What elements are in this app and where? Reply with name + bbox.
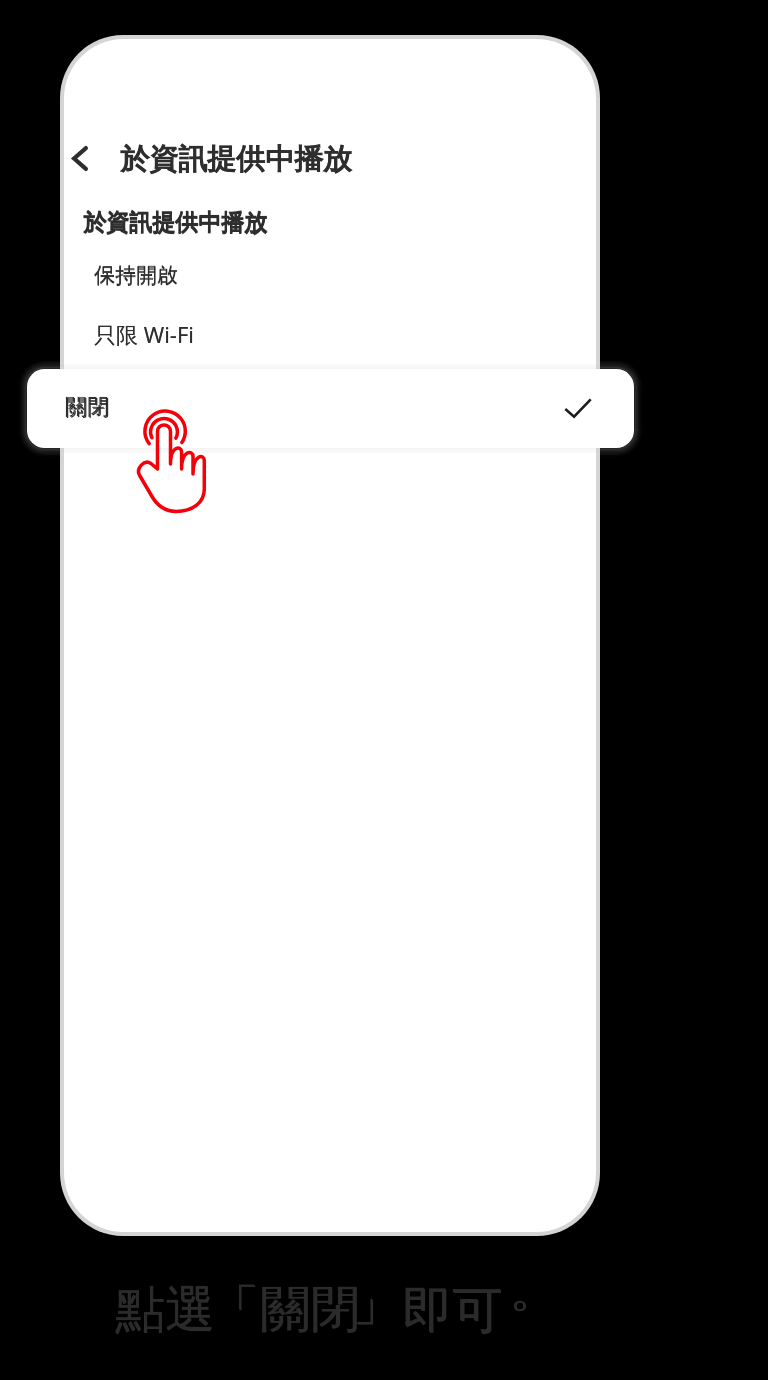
button[interactable]: 保持開啟 — [64, 247, 596, 307]
staticText: 於資訊提供中播放 — [83, 208, 267, 237]
staticText: 」 — [352, 1271, 402, 1334]
staticText: 於資訊提供中播放 — [120, 141, 352, 178]
staticText: 保持開啟 — [94, 262, 178, 288]
staticText: 即可 — [403, 1280, 503, 1343]
staticText: 保持開啟 — [94, 263, 178, 289]
staticText: 只限 Wi-Fi — [94, 319, 195, 349]
button[interactable]: 關閉 — [27, 369, 634, 448]
staticText: 關閉 — [261, 1278, 361, 1341]
staticText: 只限 Wi-Fi — [94, 319, 195, 349]
button[interactable]: Back — [64, 119, 118, 197]
staticText: 「 — [210, 1278, 260, 1341]
staticText: 點選 — [115, 1279, 215, 1342]
staticText: 於資訊提供中播放 — [83, 209, 267, 238]
staticText: 點選 — [115, 1278, 215, 1341]
staticText: 於資訊提供中播放 — [120, 141, 352, 178]
staticText: 」 — [353, 1272, 403, 1335]
staticText: 關閉 — [260, 1278, 360, 1341]
staticText: 。 — [510, 1258, 560, 1321]
staticText: 關閉 — [65, 393, 109, 421]
staticText: 「 — [209, 1277, 259, 1340]
button[interactable]: 只限 Wi-Fi — [64, 307, 596, 367]
staticText: 關閉 — [66, 394, 110, 422]
staticText: 即可 — [402, 1279, 502, 1342]
staticText: 。 — [509, 1258, 559, 1321]
